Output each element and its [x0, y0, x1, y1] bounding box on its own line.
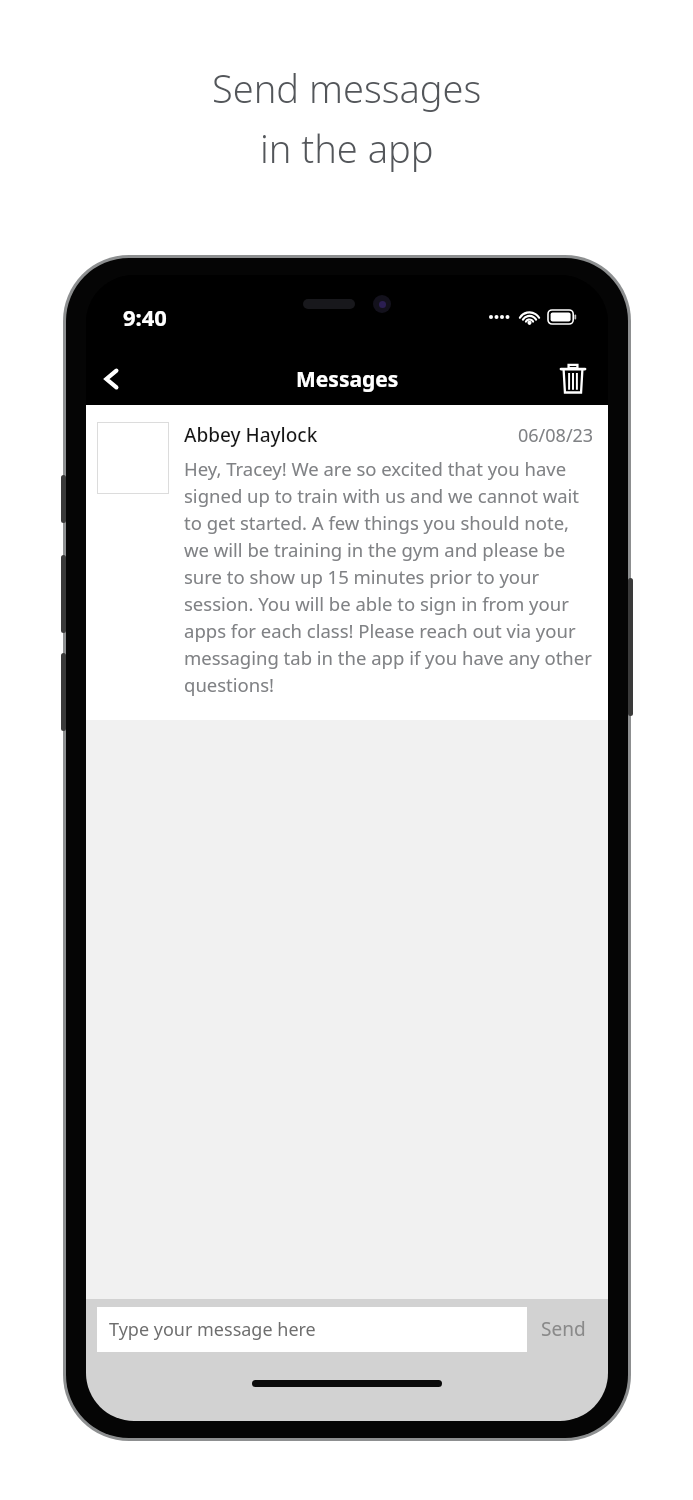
staticText: Messages — [296, 365, 399, 394]
staticText: Hey, Tracey! We are so excited that you … — [184, 456, 594, 698]
staticText: Send messages — [212, 62, 482, 114]
staticText: in the app — [260, 122, 434, 174]
staticText: Send — [541, 1316, 586, 1342]
staticText: 06/08/23 — [518, 423, 594, 448]
staticText: 9:40 — [123, 302, 167, 332]
button[interactable]: Type your message here — [97, 1307, 527, 1352]
staticText: Type your message here — [109, 1317, 316, 1342]
button[interactable]: Back — [86, 353, 138, 405]
button[interactable]: Send — [527, 1306, 600, 1352]
button[interactable]: Delete — [548, 354, 598, 404]
staticText: Abbey Haylock — [184, 422, 318, 448]
button[interactable]: Abbey Haylock — [86, 405, 608, 720]
